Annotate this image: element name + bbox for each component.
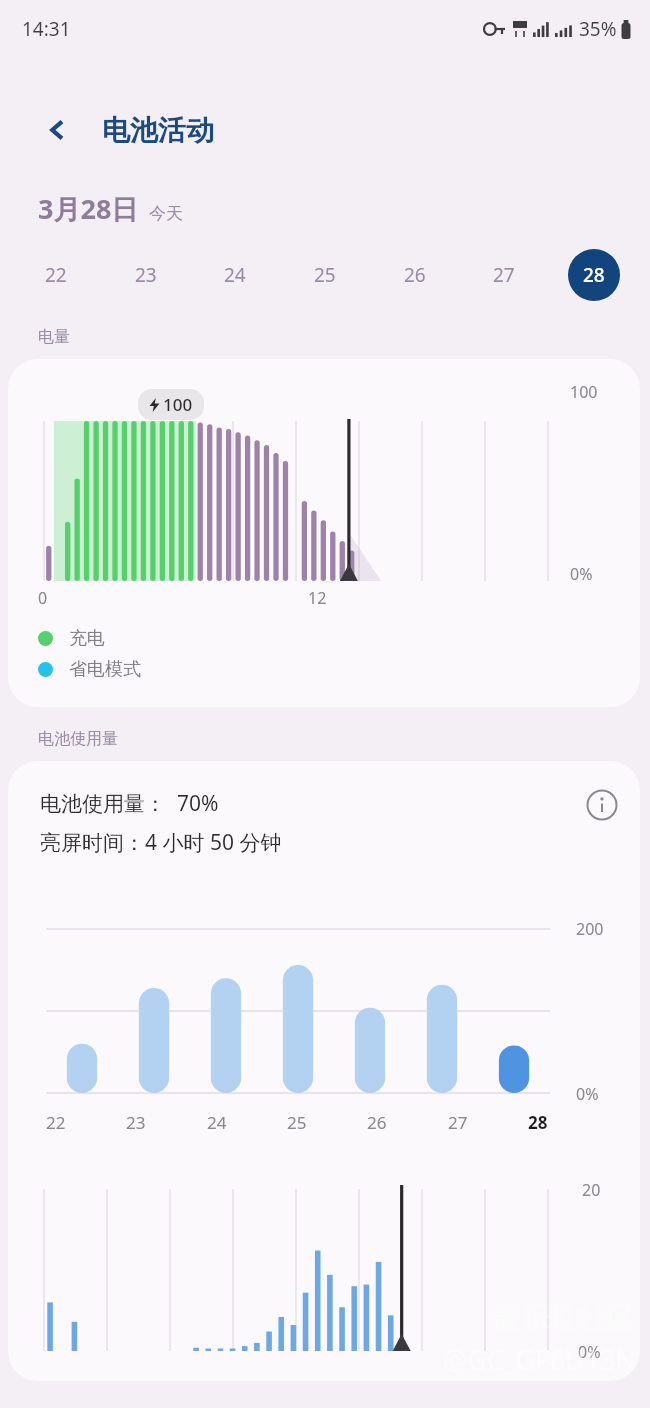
staticText: 14:31 bbox=[22, 16, 71, 42]
staticText: @GC_GF6U13N bbox=[442, 1341, 636, 1378]
staticText: 今天 bbox=[149, 203, 183, 224]
staticText: 电池活动 bbox=[102, 113, 214, 148]
staticText: 200 bbox=[576, 918, 604, 940]
staticText: 25 bbox=[314, 262, 336, 288]
staticText: 电量 bbox=[38, 327, 70, 347]
staticText: 22 bbox=[46, 1111, 66, 1134]
staticText: 27 bbox=[448, 1111, 468, 1134]
staticText: 27 bbox=[493, 262, 515, 288]
staticText: 亮屏时间：4 小时 50 分钟 bbox=[40, 828, 282, 857]
button[interactable]: 25 bbox=[299, 249, 351, 301]
staticText: 23 bbox=[135, 262, 157, 288]
button[interactable]: 24 bbox=[209, 249, 261, 301]
staticText: 26 bbox=[367, 1111, 387, 1134]
button[interactable]: 28 bbox=[568, 249, 620, 301]
staticText: 0% bbox=[576, 1083, 599, 1105]
staticText: 26 bbox=[404, 262, 426, 288]
staticText: 24 bbox=[224, 262, 246, 288]
staticText: 省电模式 bbox=[69, 658, 141, 681]
staticText: 28 bbox=[583, 262, 605, 288]
button[interactable]: 27 bbox=[478, 249, 530, 301]
staticText: 电池使用量 bbox=[38, 729, 118, 749]
staticText: 电池使用量： 70% bbox=[40, 789, 219, 818]
staticText: 0 bbox=[38, 587, 48, 609]
staticText: 充电 bbox=[69, 627, 105, 650]
button[interactable]: 100 bbox=[8, 359, 640, 707]
staticText: 23 bbox=[126, 1111, 146, 1134]
button[interactable]: Back bbox=[34, 106, 82, 154]
staticText: 100 bbox=[163, 393, 193, 416]
staticText: 20 bbox=[582, 1179, 601, 1201]
button[interactable]: Info bbox=[580, 783, 624, 827]
staticText: 3月28日 bbox=[38, 190, 139, 227]
staticText: 25 bbox=[287, 1111, 307, 1134]
button[interactable]: 22 bbox=[30, 249, 82, 301]
staticText: 0% bbox=[570, 563, 593, 585]
button[interactable]: 电池使用量： 70% bbox=[8, 761, 640, 1381]
staticText: 0% bbox=[578, 1341, 601, 1363]
staticText: 28 bbox=[528, 1111, 548, 1134]
staticText: 24 bbox=[207, 1111, 227, 1134]
staticText: 35% bbox=[579, 16, 617, 42]
staticText: 12 bbox=[308, 587, 327, 609]
staticText: 100 bbox=[570, 381, 598, 403]
button[interactable]: 23 bbox=[120, 249, 172, 301]
button[interactable]: 26 bbox=[389, 249, 441, 301]
staticText: 22 bbox=[45, 262, 67, 288]
